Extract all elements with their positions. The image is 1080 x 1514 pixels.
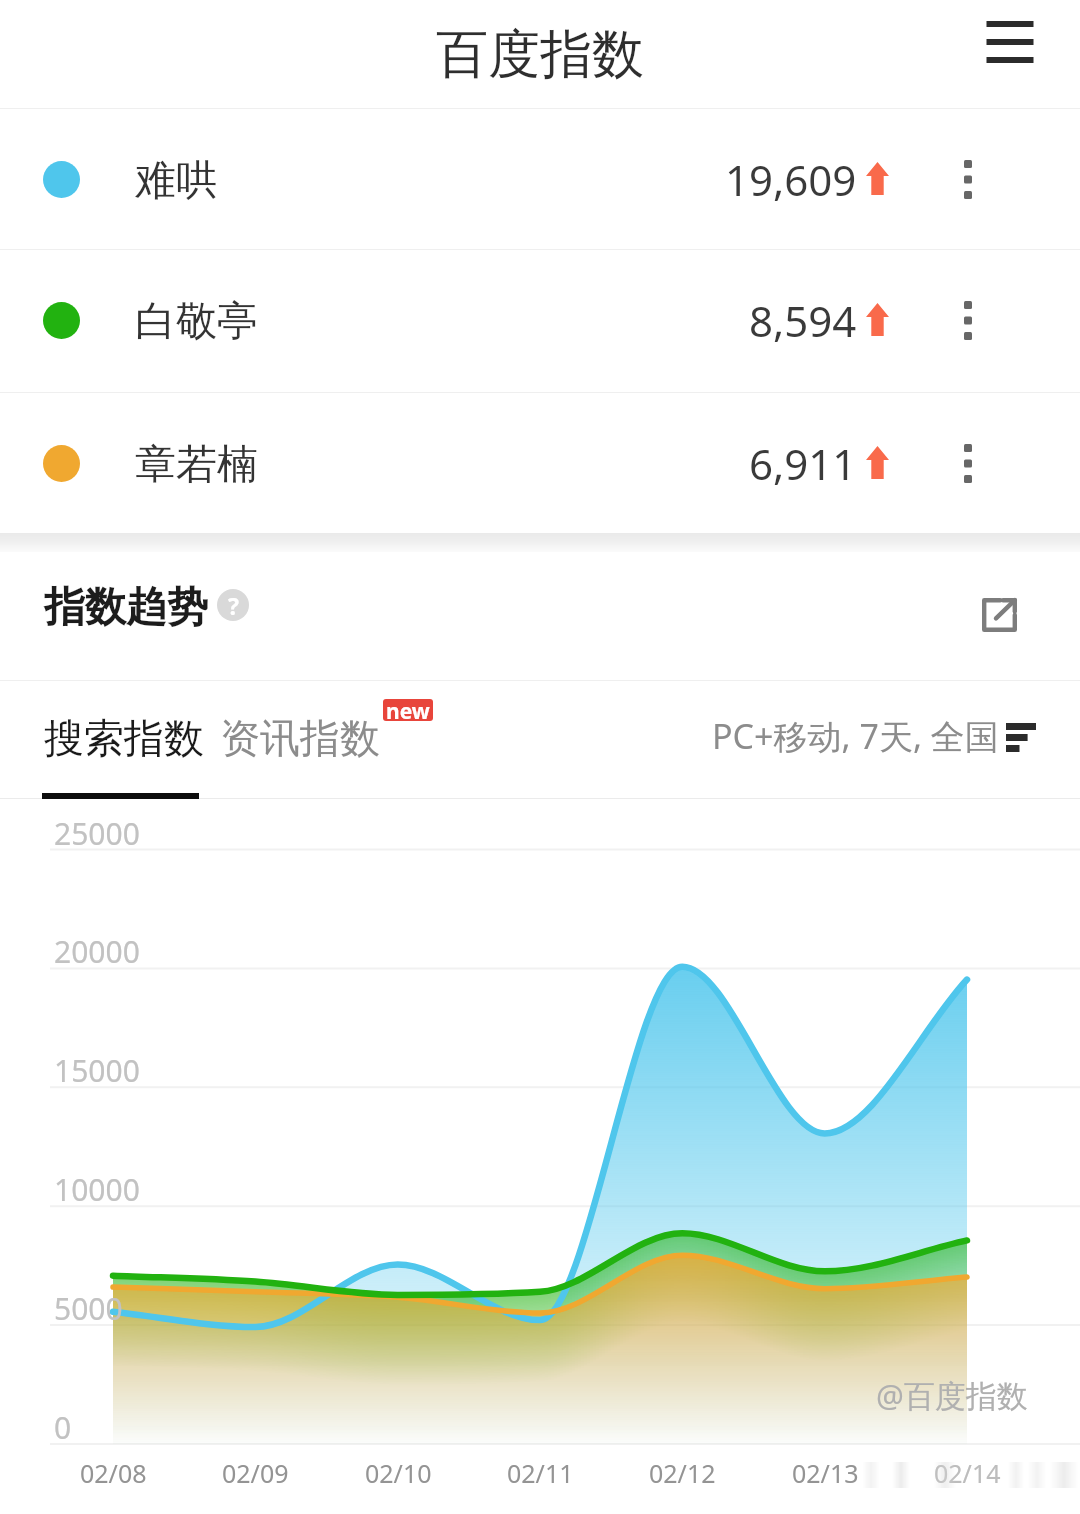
staticText: 指数趋势	[44, 582, 208, 634]
staticText: 02/14	[934, 1456, 1001, 1490]
staticText: 19,609	[725, 151, 857, 208]
button[interactable]: 资讯指数	[220, 713, 380, 763]
staticText: 15000	[54, 1050, 140, 1091]
button[interactable]: 难哄	[0, 108, 1080, 250]
staticText: 02/13	[792, 1456, 859, 1490]
button[interactable]: 搜索指数	[44, 713, 204, 763]
staticText: 02/10	[365, 1456, 432, 1490]
button[interactable]: Filter	[1000, 714, 1042, 760]
staticText: 百度指数	[436, 22, 644, 88]
button[interactable]: More options	[932, 272, 1004, 368]
staticText: 5000	[54, 1288, 123, 1329]
staticText: new	[386, 699, 430, 719]
button[interactable]: Menu	[963, 0, 1057, 84]
staticText: 搜索指数	[44, 713, 204, 763]
button[interactable]: 章若楠	[0, 392, 1080, 534]
button[interactable]: 白敬亭	[0, 249, 1080, 391]
staticText: ?	[228, 590, 239, 621]
staticText: 02/09	[222, 1456, 289, 1490]
staticText: 02/11	[507, 1456, 574, 1490]
staticText: 02/08	[80, 1456, 147, 1490]
button[interactable]: More options	[932, 131, 1004, 227]
staticText: PC+移动, 7天, 全国	[712, 713, 999, 759]
staticText: 20000	[54, 931, 140, 972]
button[interactable]: More options	[932, 415, 1004, 511]
staticText: 难哄	[135, 155, 217, 207]
staticText: 10000	[54, 1169, 140, 1210]
staticText: 资讯指数	[220, 713, 380, 763]
staticText: @百度指数	[876, 1374, 1028, 1416]
button[interactable]: Open in new window	[962, 578, 1036, 652]
staticText: 02/12	[649, 1456, 716, 1490]
staticText: 25000	[54, 813, 140, 854]
staticText: 6,911	[749, 435, 857, 492]
staticText: 0	[54, 1407, 72, 1448]
staticText: 白敬亭	[135, 296, 258, 348]
staticText: 8,594	[749, 292, 857, 349]
button[interactable]: Help	[217, 589, 249, 621]
staticText: 章若楠	[135, 439, 258, 491]
